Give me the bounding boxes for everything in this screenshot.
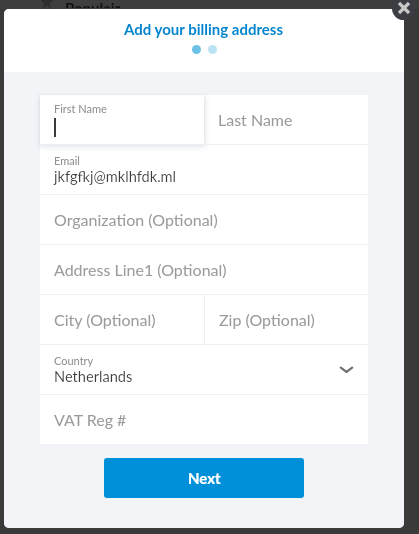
button[interactable]: Country — [40, 345, 368, 394]
button[interactable]: Zip (Optional) — [205, 295, 368, 344]
button[interactable]: First Name — [40, 95, 204, 144]
staticText: City (Optional) — [54, 310, 156, 329]
button[interactable]: Organization (Optional) — [40, 195, 368, 244]
button[interactable]: Close — [392, 0, 415, 20]
button[interactable]: Next — [104, 458, 304, 498]
staticText: Last Name — [218, 110, 293, 129]
button[interactable]: Last Name — [204, 95, 368, 144]
button[interactable]: Address Line1 (Optional) — [40, 245, 368, 294]
button[interactable]: Email — [40, 145, 368, 194]
staticText: Country — [54, 354, 94, 367]
staticText: Address Line1 (Optional) — [54, 260, 227, 279]
staticText: Populair — [65, 0, 121, 8]
staticText: Next — [188, 469, 221, 487]
staticText: Email — [54, 154, 80, 167]
staticText: Add your billing address — [124, 20, 284, 38]
staticText: VAT Reg # — [54, 410, 127, 429]
staticText: Zip (Optional) — [219, 310, 315, 329]
staticText: Netherlands — [54, 368, 133, 386]
staticText: First Name — [54, 102, 107, 115]
staticText: Organization (Optional) — [54, 210, 218, 229]
staticText: jkfgfkj@mklhfdk.ml — [54, 168, 177, 186]
button[interactable]: City (Optional) — [40, 295, 204, 344]
button[interactable]: VAT Reg # — [40, 395, 368, 444]
